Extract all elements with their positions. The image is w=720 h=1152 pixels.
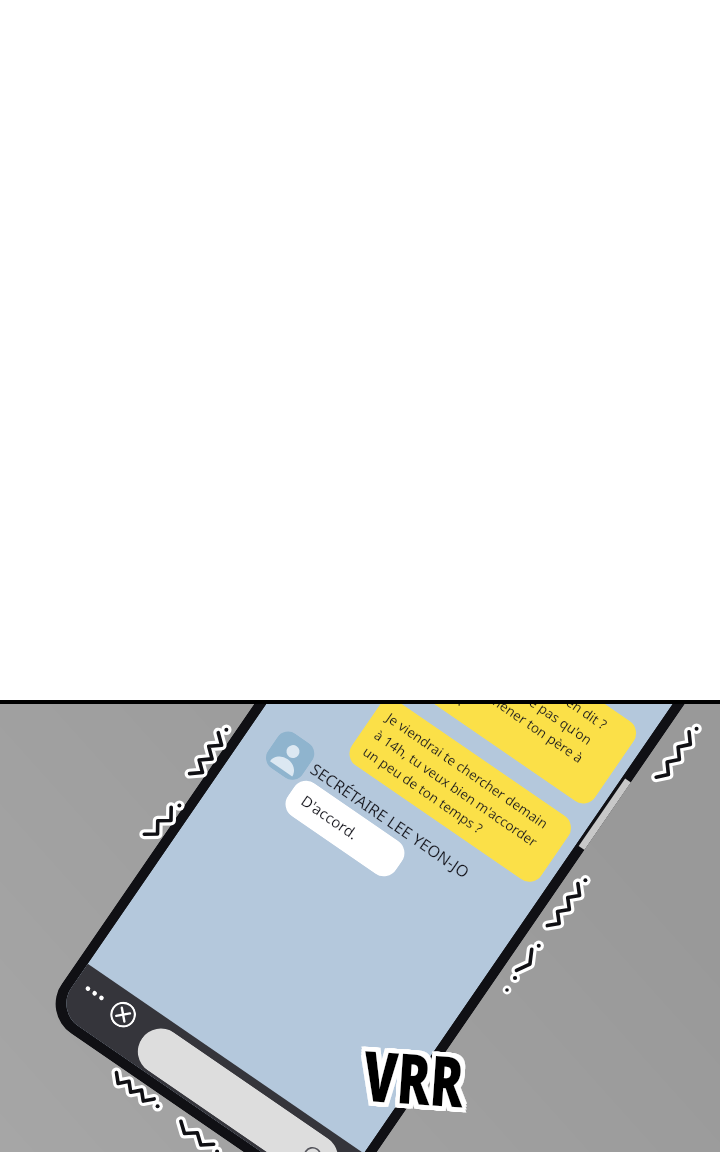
staticText: VRR bbox=[360, 1027, 468, 1129]
staticText: Je viendrai te chercher demain à 14h, tu… bbox=[359, 709, 553, 867]
staticText: VRR bbox=[362, 1029, 470, 1131]
staticText: VRR bbox=[362, 1026, 470, 1128]
staticText: VRR bbox=[358, 1025, 466, 1127]
button[interactable]: Close bbox=[105, 996, 141, 1033]
staticText: D'accord. bbox=[297, 790, 362, 844]
other: Emoji bbox=[300, 1143, 325, 1152]
staticText: VRR bbox=[358, 1031, 465, 1133]
staticText: VRR bbox=[357, 1022, 464, 1124]
staticText: VRR bbox=[356, 1031, 463, 1133]
staticText: VRR bbox=[358, 1028, 466, 1130]
staticText: VRR bbox=[360, 1031, 467, 1133]
staticText: VRR bbox=[356, 1025, 464, 1127]
staticText: VRR bbox=[360, 1028, 468, 1130]
staticText: VRR bbox=[364, 1029, 472, 1131]
staticText: VRR bbox=[361, 1023, 468, 1125]
staticText: VRR bbox=[365, 1023, 472, 1125]
other: Power button bbox=[579, 778, 631, 850]
staticText: VRR bbox=[364, 1026, 472, 1128]
staticText: VRR bbox=[356, 1028, 464, 1130]
staticText: VRR bbox=[363, 1023, 470, 1125]
staticText: SECRÉTAIRE LEE YEON-JO bbox=[306, 758, 474, 883]
staticText: VRR bbox=[359, 1023, 466, 1125]
staticText: VRR bbox=[364, 1031, 471, 1133]
button[interactable]: Emoji bbox=[129, 1019, 347, 1152]
staticText: VRR bbox=[360, 1026, 468, 1128]
staticText: Pourquoi tu ne m'as rien dit ? Je ne sav… bbox=[413, 704, 611, 784]
staticText: VRR bbox=[362, 1031, 469, 1133]
